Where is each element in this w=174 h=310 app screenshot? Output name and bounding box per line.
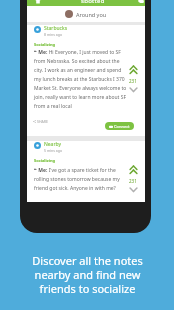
- button[interactable]: SHARE: [33, 119, 48, 124]
- staticText: Discover all the notes nearby and find n…: [32, 253, 143, 296]
- staticText: Nearby: [44, 141, 62, 148]
- staticText: spotted: [81, 0, 105, 3]
- button[interactable]: Upvote: [129, 65, 138, 75]
- staticText: 5 mins ago: [44, 148, 63, 153]
- staticText: Around you: [76, 11, 107, 18]
- button[interactable]: Upvote: [129, 165, 138, 175]
- button[interactable]: Messages: [138, 0, 144, 4]
- button[interactable]: Nearby: [27, 141, 145, 202]
- staticText: Socializing: [34, 42, 56, 47]
- button[interactable]: Around you: [27, 6, 145, 22]
- button[interactable]: Starbucks: [27, 25, 145, 136]
- button[interactable]: Home: [35, 0, 41, 4]
- button[interactable]: Downvote: [129, 87, 138, 93]
- staticText: Connect: [114, 124, 130, 129]
- staticText: ❝ Me: I've got a spare ticket for the ro…: [34, 167, 128, 191]
- staticText: 231: [129, 178, 137, 184]
- button[interactable]: Connect: [105, 122, 134, 130]
- staticText: Socializing: [34, 158, 56, 163]
- staticText: Starbucks: [44, 25, 68, 32]
- staticText: 8 mins ago: [44, 32, 63, 37]
- staticText: 231: [129, 78, 137, 84]
- staticText: SHARE: [37, 119, 48, 124]
- button[interactable]: Downvote: [129, 187, 138, 193]
- staticText: ❝ Me: Hi Everyone, I just moved to SF fr…: [34, 49, 128, 109]
